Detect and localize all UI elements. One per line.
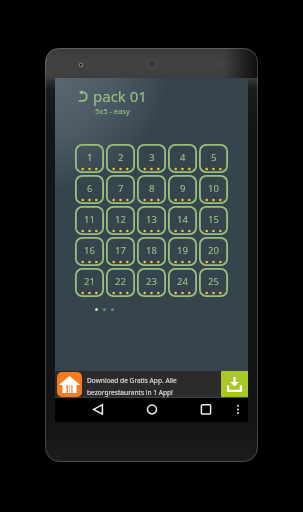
button[interactable]: 15: [199, 206, 228, 235]
staticText: 5: [211, 151, 217, 164]
staticText: 1: [87, 151, 93, 164]
staticText: 25: [208, 275, 219, 288]
button[interactable]: 2: [106, 144, 135, 173]
button[interactable]: 3: [137, 144, 166, 173]
button[interactable]: Home: [140, 398, 164, 422]
staticText: 23: [146, 275, 157, 288]
button[interactable]: 17: [106, 237, 135, 266]
staticText: 14: [177, 213, 188, 226]
button[interactable]: 1: [75, 144, 104, 173]
button[interactable]: Back: [86, 398, 110, 422]
button[interactable]: 4: [168, 144, 197, 173]
button[interactable]: Recent apps: [194, 398, 218, 422]
button[interactable]: 9: [168, 175, 197, 204]
staticText: 3: [149, 151, 155, 164]
button[interactable]: 8: [137, 175, 166, 204]
staticText: pack 01: [93, 86, 147, 106]
staticText: 24: [177, 275, 188, 288]
staticText: 20: [208, 244, 219, 257]
button[interactable]: 22: [106, 268, 135, 297]
staticText: 8: [149, 182, 155, 195]
staticText: 10: [208, 182, 219, 195]
button[interactable]: 7: [106, 175, 135, 204]
button[interactable]: 5: [199, 144, 228, 173]
staticText: 11: [84, 213, 95, 226]
button[interactable]: 20: [199, 237, 228, 266]
button[interactable]: 16: [75, 237, 104, 266]
button[interactable]: 24: [168, 268, 197, 297]
staticText: 6: [87, 182, 93, 195]
button[interactable]: 12: [106, 206, 135, 235]
button[interactable]: More options: [228, 398, 248, 422]
button[interactable]: 13: [137, 206, 166, 235]
staticText: 4: [180, 151, 186, 164]
button[interactable]: 10: [199, 175, 228, 204]
staticText: 9: [180, 182, 186, 195]
button[interactable]: 18: [137, 237, 166, 266]
staticText: 13: [146, 213, 157, 226]
staticText: 7: [118, 182, 124, 195]
button[interactable]: 6: [75, 175, 104, 204]
button[interactable]: Download de Gratis App. Alle: [55, 371, 248, 397]
button[interactable]: 23: [137, 268, 166, 297]
staticText: 17: [115, 244, 126, 257]
button[interactable]: 21: [75, 268, 104, 297]
staticText: Download de Gratis App. Alle: [87, 376, 177, 385]
other: Back: [78, 90, 88, 102]
staticText: 19: [177, 244, 188, 257]
button[interactable]: Back: [78, 86, 147, 106]
staticText: 5x5 - easy: [95, 106, 130, 116]
button[interactable]: Download: [221, 371, 248, 397]
staticText: 16: [84, 244, 95, 257]
staticText: bezorgrestaurants in 1 App!: [87, 388, 173, 397]
staticText: 2: [118, 151, 124, 164]
staticText: 12: [115, 213, 126, 226]
button[interactable]: 11: [75, 206, 104, 235]
button[interactable]: 14: [168, 206, 197, 235]
staticText: 18: [146, 244, 157, 257]
staticText: 21: [84, 275, 95, 288]
button[interactable]: 25: [199, 268, 228, 297]
button[interactable]: 19: [168, 237, 197, 266]
staticText: 15: [208, 213, 219, 226]
staticText: 22: [115, 275, 126, 288]
